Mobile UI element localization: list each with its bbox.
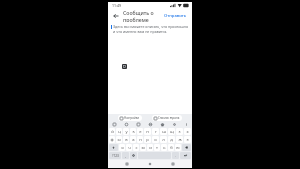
staticText: е xyxy=(139,129,142,135)
button[interactable]: Back xyxy=(123,160,131,168)
button[interactable]: Voice input xyxy=(130,152,137,159)
button[interactable]: ?123 xyxy=(109,152,121,159)
staticText: ш xyxy=(162,129,166,135)
button[interactable]: я xyxy=(119,144,125,151)
button[interactable]: Back xyxy=(111,11,120,20)
button[interactable]: т xyxy=(154,144,160,151)
button[interactable]: . xyxy=(172,152,179,159)
button[interactable]: ь xyxy=(161,144,167,151)
button[interactable]: Отправить xyxy=(162,12,189,20)
button[interactable]: м xyxy=(140,144,146,151)
staticText: ю xyxy=(176,145,180,151)
button[interactable]: б xyxy=(168,144,174,151)
button[interactable]: More xyxy=(183,121,189,127)
staticText: с xyxy=(135,145,138,151)
button[interactable]: л xyxy=(160,136,167,143)
staticText: Здесь вы сможете описать, что произошло … xyxy=(113,24,189,34)
button[interactable]: Recents xyxy=(169,160,177,168)
button[interactable]: р xyxy=(144,136,151,143)
button[interactable]: , xyxy=(122,152,129,159)
button[interactable]: з xyxy=(176,128,183,135)
staticText: а xyxy=(132,137,135,143)
staticText: , xyxy=(125,154,126,158)
button[interactable]: и xyxy=(147,144,153,151)
button[interactable]: ж xyxy=(176,136,183,143)
button[interactable]: х xyxy=(184,128,191,135)
button[interactable]: Backspace xyxy=(182,144,191,151)
staticText: Снимок экрана xyxy=(158,116,180,120)
button[interactable]: Настройки xyxy=(118,115,142,121)
button[interactable]: й xyxy=(109,128,115,135)
button[interactable]: е xyxy=(137,128,143,135)
button[interactable]: г xyxy=(152,128,159,135)
button[interactable]: Emoji xyxy=(123,121,129,127)
button[interactable]: у xyxy=(123,128,129,135)
staticText: р xyxy=(146,137,149,143)
staticText: Настройки xyxy=(124,116,140,120)
button[interactable]: Снимок экрана xyxy=(152,115,182,121)
button[interactable]: Attach screenshot xyxy=(122,64,127,69)
staticText: к xyxy=(132,129,135,135)
staticText: э xyxy=(186,137,189,143)
button[interactable]: в xyxy=(123,136,129,143)
staticText: ы xyxy=(117,137,121,143)
button[interactable]: Enter xyxy=(180,152,191,159)
button[interactable]: э xyxy=(184,136,191,143)
staticText: т xyxy=(156,145,158,151)
button[interactable]: ы xyxy=(116,136,122,143)
button[interactable]: ш xyxy=(160,128,167,135)
staticText: ч xyxy=(128,145,131,151)
staticText: ж xyxy=(178,137,182,143)
button[interactable]: щ xyxy=(168,128,175,135)
staticText: . xyxy=(175,154,176,158)
button[interactable]: Home xyxy=(146,160,154,168)
staticText: м xyxy=(141,145,145,151)
button[interactable]: Clipboard xyxy=(111,121,117,127)
button[interactable]: Settings xyxy=(171,121,177,127)
button[interactable]: ч xyxy=(126,144,132,151)
button[interactable]: GIF xyxy=(135,121,141,127)
button[interactable]: д xyxy=(168,136,175,143)
button[interactable]: ф xyxy=(109,136,115,143)
staticText: о xyxy=(154,137,157,143)
staticText: проблеме xyxy=(123,16,149,22)
staticText: Сообщить о xyxy=(123,9,154,16)
staticText: й xyxy=(111,129,114,135)
staticText: ц xyxy=(118,129,121,135)
staticText: в xyxy=(125,137,128,143)
button[interactable]: Translate xyxy=(147,121,153,127)
button[interactable]: а xyxy=(130,136,136,143)
staticText: н xyxy=(146,129,149,135)
staticText: 11:49 xyxy=(112,3,121,8)
staticText: л xyxy=(162,137,165,143)
staticText: з xyxy=(178,129,181,135)
staticText: х xyxy=(186,129,189,135)
staticText: ?123 xyxy=(112,154,119,158)
staticText: ь xyxy=(163,145,166,151)
staticText: я xyxy=(121,145,124,151)
button[interactable]: с xyxy=(133,144,139,151)
button[interactable]: ц xyxy=(116,128,122,135)
staticText: Отправить xyxy=(164,13,187,19)
button[interactable]: Theme xyxy=(159,121,165,127)
button[interactable]: к xyxy=(130,128,136,135)
staticText: г xyxy=(155,129,157,135)
staticText: б xyxy=(170,145,173,151)
staticText: щ xyxy=(170,129,174,135)
staticText: у xyxy=(125,129,128,135)
staticText: ф xyxy=(110,137,114,143)
staticText: п xyxy=(139,137,142,143)
button[interactable]: н xyxy=(144,128,151,135)
button[interactable]: о xyxy=(152,136,159,143)
button[interactable]: ю xyxy=(175,144,181,151)
staticText: д xyxy=(170,137,173,143)
staticText: и xyxy=(149,145,152,151)
button[interactable]: Shift xyxy=(109,144,118,151)
button[interactable]: п xyxy=(137,136,143,143)
